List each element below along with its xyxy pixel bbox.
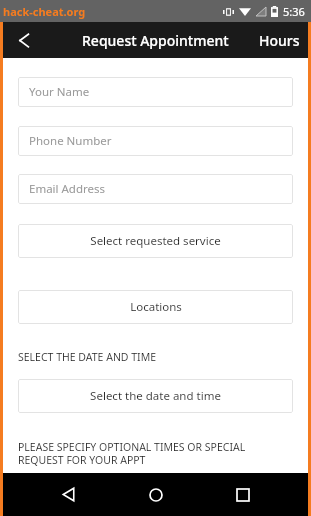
button[interactable]: Home [134,473,178,516]
button[interactable]: Recents [221,473,265,516]
staticText: PLEASE SPECIFY OPTIONAL TIMES OR SPECIAL… [18,440,246,467]
button[interactable]: Email Address [18,174,293,204]
staticText: Your Name [29,84,90,100]
staticText: hack-cheat.org [3,4,86,19]
button[interactable]: Select the date and time [18,379,293,413]
staticText: Email Address [29,181,106,197]
staticText: 5:36 [283,4,305,19]
button[interactable]: Locations [18,290,293,324]
staticText: Request Appointment [82,31,229,50]
staticText: Locations [130,299,182,315]
staticText: Select requested service [90,233,221,249]
staticText: Select the date and time [90,388,221,404]
button[interactable]: Back [46,473,90,516]
button[interactable]: Phone Number [18,126,293,156]
button[interactable]: Back [3,22,45,58]
staticText: SELECT THE DATE AND TIME [18,350,157,364]
staticText: Hours [259,31,300,50]
staticText: Phone Number [29,133,112,149]
button[interactable]: Select requested service [18,224,293,258]
button[interactable]: Hours [251,22,308,58]
button[interactable]: Your Name [18,77,293,107]
